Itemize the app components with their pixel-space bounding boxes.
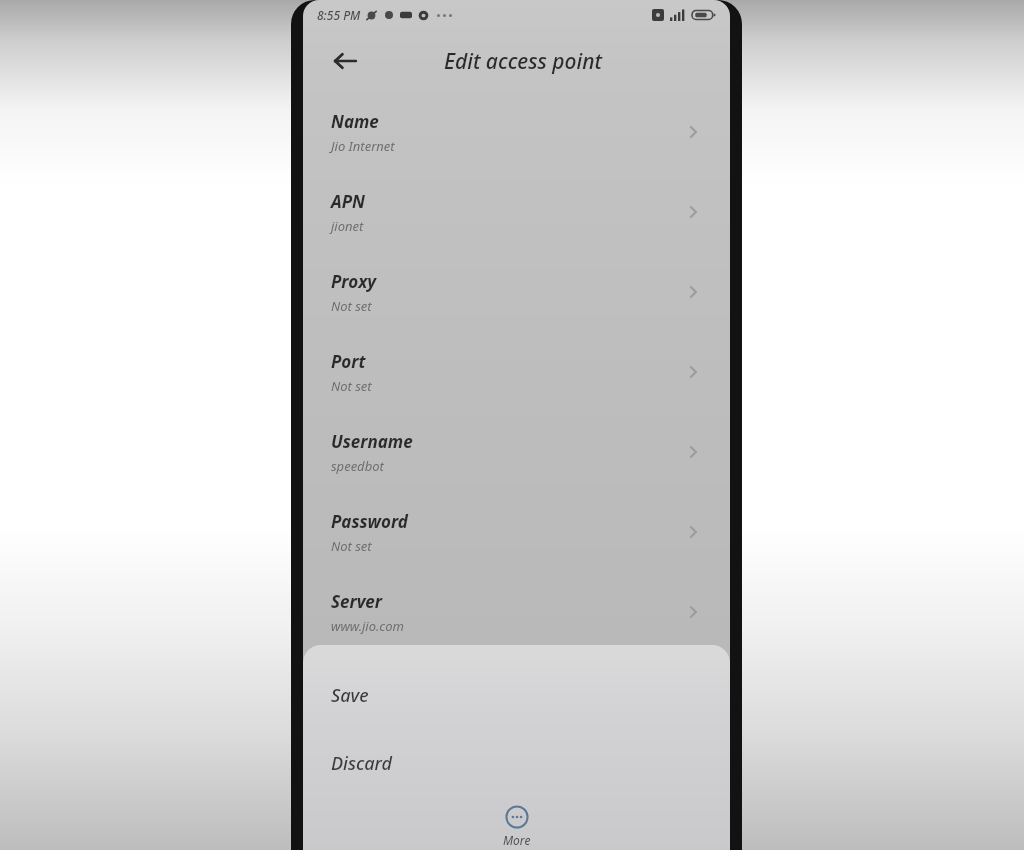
staticText: Save [331, 683, 369, 708]
button[interactable]: Save [303, 661, 730, 729]
staticText: Not set [331, 537, 372, 555]
staticText: jionet [331, 217, 364, 235]
button[interactable]: Name [303, 92, 730, 172]
button[interactable]: More [503, 805, 531, 848]
button[interactable]: Server [303, 572, 730, 652]
staticText: Username [331, 430, 413, 453]
button[interactable]: Port [303, 332, 730, 412]
staticText: More [503, 832, 531, 848]
button[interactable]: APN [303, 172, 730, 252]
staticText: Not set [331, 297, 372, 315]
button[interactable]: Username [303, 412, 730, 492]
button[interactable]: Password [303, 492, 730, 572]
staticText: Not set [331, 377, 372, 395]
staticText: www.jio.com [331, 617, 404, 635]
staticText: Edit access point [444, 47, 602, 76]
button[interactable]: Proxy [303, 252, 730, 332]
staticText: Proxy [331, 270, 377, 293]
staticText: 8:55 PM [317, 7, 361, 23]
staticText: APN [331, 190, 365, 213]
button[interactable]: Discard [303, 729, 730, 797]
staticText: Name [331, 110, 379, 133]
staticText: Server [331, 590, 382, 613]
staticText: speedbot [331, 457, 384, 475]
staticText: Port [331, 350, 366, 373]
staticText: Discard [331, 751, 393, 776]
staticText: Password [331, 510, 408, 533]
staticText: Jio Internet [331, 137, 395, 155]
button[interactable]: Back [323, 39, 367, 83]
